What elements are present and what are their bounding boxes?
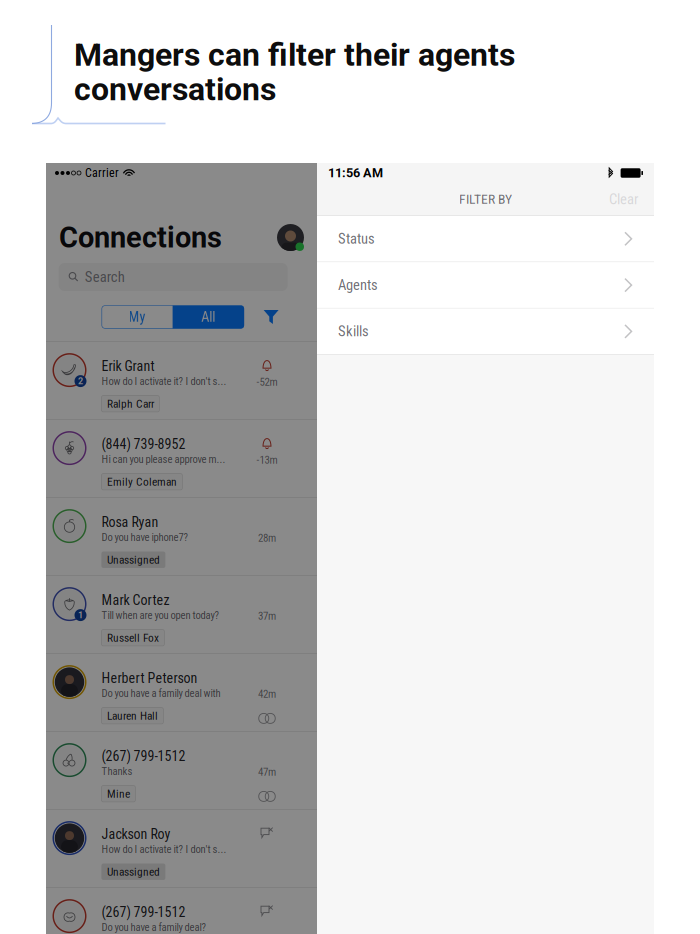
- staticText: 37m: [258, 610, 276, 622]
- button[interactable]: Profile: [277, 224, 304, 251]
- staticText: Jackson Roy: [101, 826, 170, 842]
- staticText: Mark Cortez: [101, 592, 169, 608]
- staticText: 47m: [258, 766, 276, 778]
- button[interactable]: (844) 739-8952: [46, 420, 317, 498]
- staticText: Carrier: [85, 166, 119, 180]
- staticText: -52m: [256, 376, 277, 388]
- staticText: Do you have a family deal?: [101, 921, 206, 933]
- button[interactable]: Herbert Peterson: [46, 654, 317, 732]
- staticText: FILTER BY: [459, 191, 512, 207]
- button[interactable]: 2: [46, 342, 317, 420]
- staticText: 2: [78, 376, 83, 386]
- staticText: Thanks: [101, 765, 132, 777]
- staticText: Till when are you open today?: [101, 609, 219, 621]
- staticText: 1: [78, 610, 83, 620]
- staticText: conversations: [74, 70, 276, 108]
- button[interactable]: All: [173, 305, 244, 328]
- staticText: Herbert Peterson: [101, 670, 197, 686]
- staticText: Ralph Carr: [107, 397, 154, 410]
- staticText: Mangers can filter their agents: [74, 36, 515, 73]
- staticText: Mine: [107, 787, 130, 800]
- button[interactable]: Status: [317, 216, 654, 262]
- staticText: (844) 739-8952: [101, 436, 185, 452]
- staticText: How do I activate it? I don't s...: [101, 375, 226, 387]
- button[interactable]: My: [102, 305, 173, 328]
- staticText: My: [129, 309, 146, 325]
- button[interactable]: (267) 799-1512: [46, 732, 317, 810]
- staticText: Connections: [59, 220, 222, 254]
- staticText: Status: [338, 230, 375, 247]
- button[interactable]: Filter: [264, 310, 279, 324]
- staticText: Russell Fox: [107, 631, 159, 644]
- button[interactable]: (267) 799-1512: [46, 888, 317, 934]
- staticText: (267) 799-1512: [101, 904, 185, 920]
- staticText: Hi can you please approve m...: [101, 453, 225, 465]
- staticText: Agents: [338, 277, 378, 294]
- staticText: (267) 799-1512: [101, 748, 185, 764]
- staticText: Clear: [609, 191, 638, 208]
- staticText: 11:56 AM: [328, 166, 383, 180]
- button[interactable]: 1: [46, 576, 317, 654]
- staticText: 28m: [258, 532, 276, 544]
- staticText: Search: [85, 268, 125, 286]
- staticText: Lauren Hall: [107, 709, 158, 722]
- staticText: Emily Coleman: [107, 475, 177, 488]
- button[interactable]: Agents: [317, 262, 654, 308]
- button[interactable]: Jackson Roy: [46, 810, 317, 888]
- staticText: 42m: [258, 688, 276, 700]
- button[interactable]: Rosa Ryan: [46, 498, 317, 576]
- button[interactable]: Skills: [317, 309, 654, 354]
- staticText: Do you have iphone7?: [101, 531, 188, 543]
- staticText: -13m: [256, 454, 277, 466]
- staticText: Erik Grant: [101, 358, 154, 374]
- staticText: All: [201, 309, 215, 325]
- staticText: Rosa Ryan: [101, 514, 158, 530]
- button[interactable]: Clear: [609, 191, 638, 208]
- staticText: Unassigned: [107, 553, 160, 566]
- staticText: Unassigned: [107, 865, 160, 878]
- staticText: Do you have a family deal with: [101, 687, 220, 699]
- staticText: How do I activate it? I don't s...: [101, 843, 226, 855]
- staticText: Skills: [338, 323, 369, 340]
